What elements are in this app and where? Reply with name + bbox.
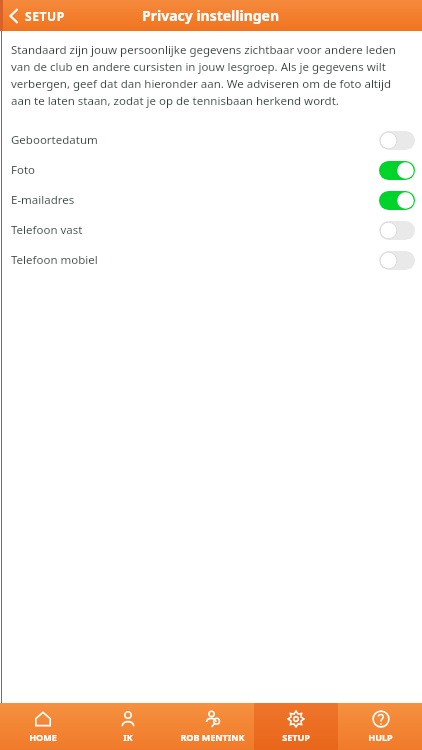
- button[interactable]: E-mailadres: [0, 185, 422, 215]
- staticText: SETUP: [282, 731, 310, 743]
- staticText: E-mailadres: [11, 192, 75, 208]
- button[interactable]: Foto: [0, 155, 422, 185]
- staticText: Geboortedatum: [11, 132, 98, 148]
- button[interactable]: SETUP: [0, 4, 75, 28]
- staticText: Foto: [11, 162, 36, 178]
- button[interactable]: Telefoon mobiel: [0, 245, 422, 275]
- staticText: HULP: [368, 731, 393, 743]
- button[interactable]: ROB MENTINK: [170, 703, 254, 750]
- button[interactable]: HOME: [0, 703, 85, 750]
- staticText: Privacy instellingen: [142, 6, 280, 25]
- button[interactable]: IK: [85, 703, 170, 750]
- staticText: HOME: [29, 731, 57, 743]
- button[interactable]: HULP: [338, 703, 422, 750]
- staticText: Telefoon mobiel: [11, 252, 98, 268]
- staticText: ROB MENTINK: [180, 731, 245, 743]
- button[interactable]: SETUP: [254, 703, 338, 750]
- button[interactable]: Telefoon vast: [0, 215, 422, 245]
- staticText: IK: [123, 731, 133, 743]
- staticText: Telefoon vast: [11, 222, 83, 238]
- button[interactable]: Geboortedatum: [0, 125, 422, 155]
- staticText: Standaard zijn jouw persoonlijke gegeven…: [11, 42, 408, 109]
- staticText: SETUP: [25, 8, 65, 24]
